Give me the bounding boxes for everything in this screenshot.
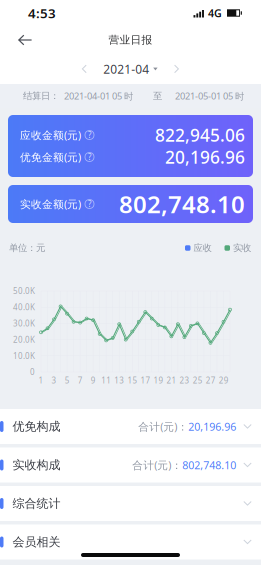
staticText: 20,196.96 — [165, 145, 245, 168]
staticText: 应收 — [193, 242, 211, 254]
staticText: 7 — [78, 375, 83, 386]
staticText: 1 — [38, 375, 43, 386]
staticText: 结算日： — [23, 90, 59, 102]
staticText: 2021-04 — [103, 61, 149, 77]
button[interactable]: 综合统计 — [0, 486, 261, 521]
staticText: 单位：元 — [9, 242, 45, 254]
staticText: 应收金额(元) — [20, 128, 81, 142]
button[interactable]: 上个月 — [75, 57, 94, 81]
staticText: ? — [88, 152, 91, 162]
staticText: 5 — [65, 375, 70, 386]
staticText: 30.0K — [13, 318, 35, 329]
staticText: 营业日报 — [108, 33, 152, 46]
staticText: 合计(元)： — [132, 458, 182, 472]
staticText: 实收构成 — [12, 458, 60, 472]
staticText: 优免构成 — [12, 419, 60, 434]
staticText: 10.0K — [13, 350, 35, 361]
staticText: 27 — [206, 375, 216, 386]
staticText: 802,748.10 — [182, 458, 236, 472]
staticText: 2021-05-01 05 时 — [175, 90, 244, 102]
staticText: 50.0K — [13, 286, 35, 296]
staticText: 17 — [140, 375, 150, 386]
staticText: 40.0K — [13, 302, 35, 312]
button[interactable]: 下个月 — [167, 57, 186, 81]
staticText: 20.0K — [13, 334, 35, 345]
staticText: 15 — [127, 375, 137, 386]
staticText: 23 — [180, 375, 190, 386]
staticText: 实收金额(元) — [20, 197, 81, 211]
staticText: 29 — [219, 375, 229, 386]
button[interactable]: 会员相关 — [0, 524, 261, 559]
staticText: ? — [88, 130, 91, 140]
button[interactable]: 2021-04 — [94, 57, 167, 81]
staticText: 实收 — [233, 242, 251, 254]
staticText: 优免金额(元) — [20, 150, 81, 164]
staticText: 21 — [166, 375, 176, 386]
staticText: 822,945.06 — [155, 123, 245, 146]
staticText: 4G — [208, 6, 222, 20]
staticText: 20,196.96 — [188, 419, 236, 434]
staticText: 会员相关 — [12, 535, 60, 549]
staticText: 25 — [193, 375, 203, 386]
staticText: ? — [88, 199, 91, 209]
staticText: 11 — [101, 375, 111, 386]
staticText: 802,748.10 — [119, 188, 245, 220]
staticText: 0 — [30, 367, 35, 377]
staticText: 4:53 — [28, 4, 56, 22]
button[interactable]: 返回 — [13, 30, 37, 50]
staticText: 3 — [52, 375, 57, 386]
staticText: 2021-04-01 05 时 — [64, 90, 133, 102]
button[interactable]: 优免构成 — [0, 409, 261, 444]
staticText: 至 — [153, 90, 162, 102]
button[interactable]: 实收构成 — [0, 447, 261, 482]
staticText: 9 — [91, 375, 96, 386]
staticText: 综合统计 — [12, 496, 60, 511]
staticText: 合计(元)： — [138, 419, 188, 434]
staticText: 19 — [153, 375, 163, 386]
staticText: 13 — [114, 375, 124, 386]
